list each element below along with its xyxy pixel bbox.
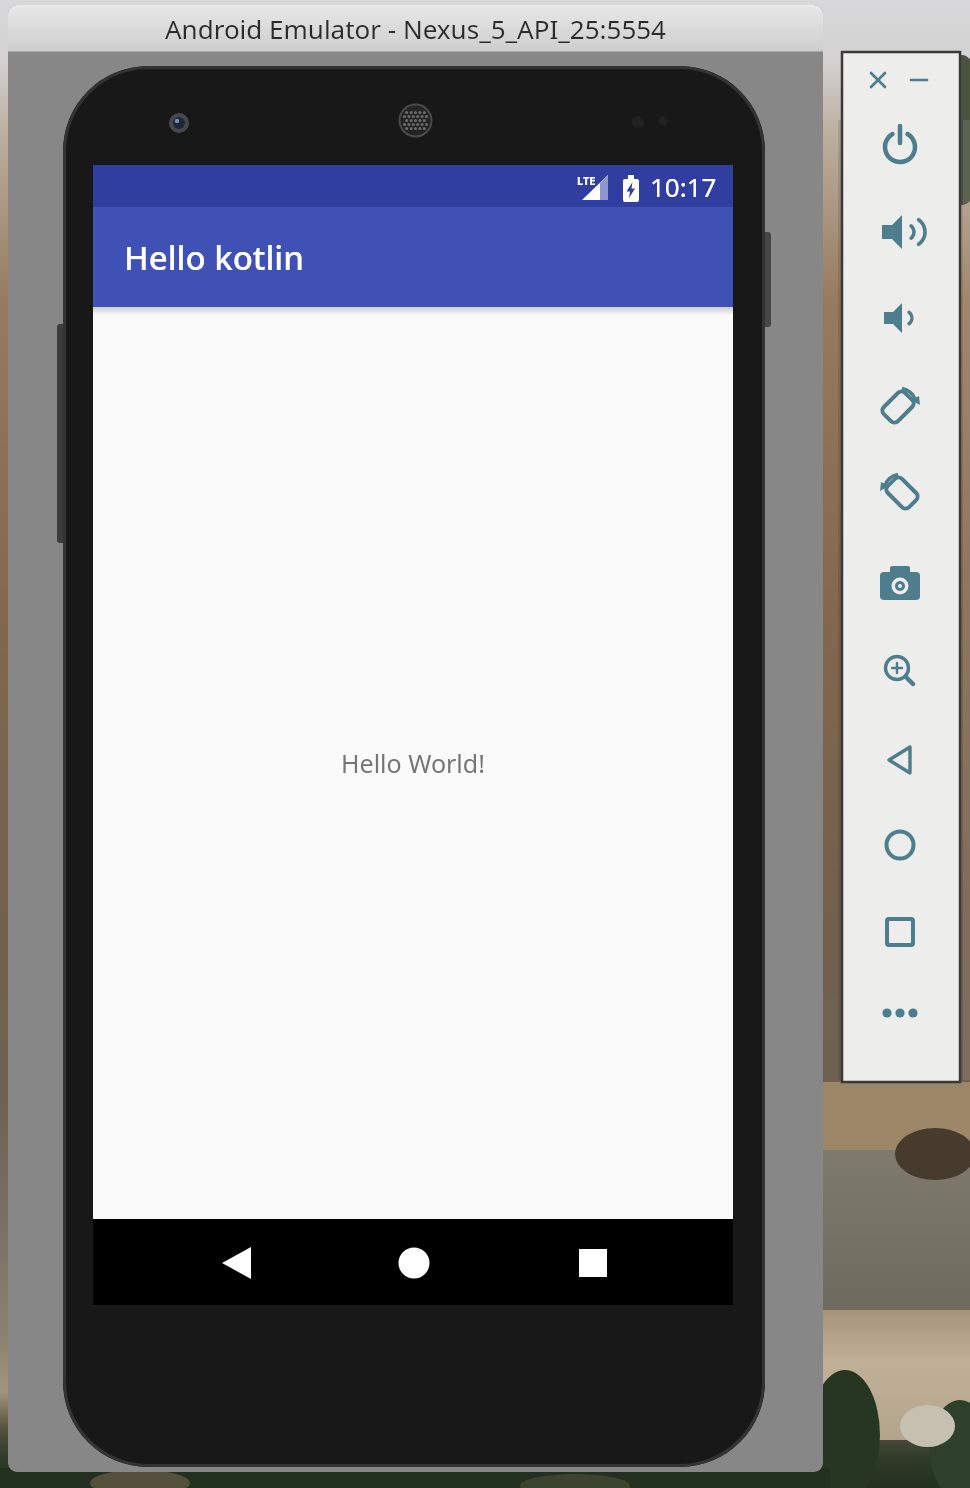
button[interactable]	[875, 820, 925, 870]
button[interactable]	[905, 66, 933, 94]
button[interactable]	[875, 466, 925, 516]
button[interactable]	[875, 988, 925, 1038]
staticText: Hello kotlin	[124, 235, 304, 280]
button[interactable]	[875, 120, 925, 170]
button[interactable]	[875, 907, 925, 957]
button[interactable]: Hello kotlin	[93, 207, 733, 307]
staticText: Android Emulator - Nexus_5_API_25:5554	[165, 11, 666, 46]
staticText: Hello World!	[341, 746, 485, 780]
button[interactable]	[209, 1245, 273, 1293]
button[interactable]	[875, 559, 925, 609]
button[interactable]	[561, 1245, 625, 1293]
staticText: LTE	[577, 173, 596, 188]
button[interactable]	[875, 646, 925, 696]
button[interactable]	[875, 380, 925, 430]
button[interactable]: Android Emulator - Nexus_5_API_25:5554	[8, 5, 823, 52]
button[interactable]	[864, 66, 892, 94]
button[interactable]	[382, 1245, 446, 1293]
button[interactable]	[875, 207, 925, 257]
button[interactable]	[875, 293, 925, 343]
staticText: 10:17	[650, 169, 717, 204]
button[interactable]	[875, 735, 925, 785]
